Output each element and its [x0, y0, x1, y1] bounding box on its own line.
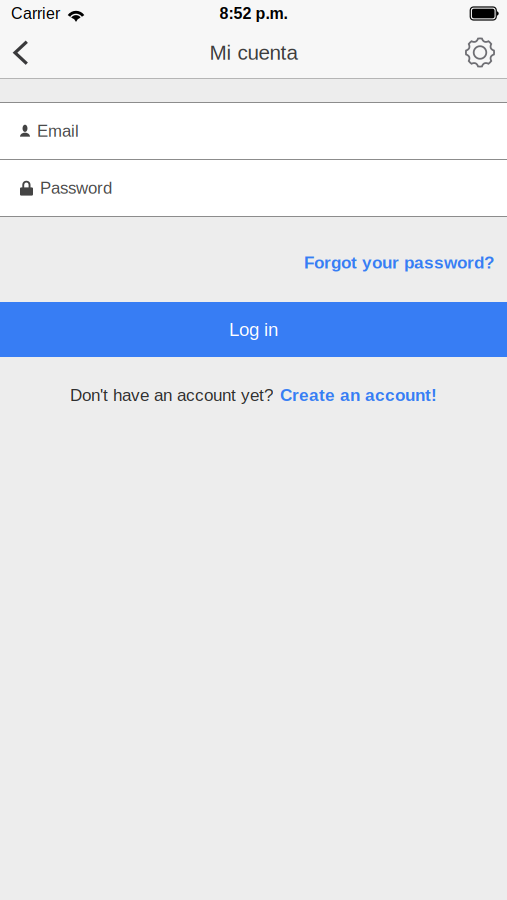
button[interactable]: Back: [0, 27, 42, 78]
button[interactable]: Password: [0, 160, 507, 216]
button[interactable]: Log in: [0, 302, 507, 357]
staticText: Create an account!: [280, 385, 437, 404]
staticText: Mi cuenta: [209, 41, 297, 64]
button[interactable]: Settings: [459, 27, 501, 78]
button[interactable]: Email: [0, 103, 507, 159]
staticText: Log in: [229, 319, 278, 340]
staticText: Email: [37, 122, 79, 140]
button[interactable]: Forgot your password?: [292, 241, 507, 278]
staticText: 8:52 p.m.: [219, 5, 287, 22]
staticText: Don't have an account yet?: [70, 385, 273, 405]
staticText: Forgot your password?: [304, 253, 494, 272]
staticText: Password: [40, 179, 112, 197]
staticText: Carrier: [11, 5, 60, 22]
button[interactable]: Create an account!: [280, 385, 437, 404]
